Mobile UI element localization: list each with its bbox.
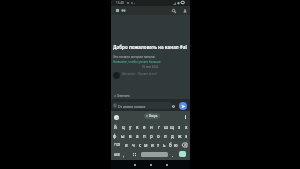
staticText: я <box>125 142 128 148</box>
staticText: ц <box>122 124 125 130</box>
staticText: т <box>157 142 160 148</box>
staticText: ч <box>132 142 135 148</box>
button[interactable]: Back <box>127 160 143 169</box>
staticText: ш <box>164 124 168 130</box>
staticText: и <box>151 142 154 148</box>
button[interactable]: Avatar <box>113 72 120 79</box>
button[interactable]: у <box>127 122 134 131</box>
staticText: й <box>114 124 117 130</box>
button[interactable]: Send <box>179 102 187 110</box>
button[interactable]: ф <box>111 131 119 140</box>
staticText: у <box>129 124 132 130</box>
button[interactable]: в <box>127 131 134 140</box>
button[interactable]: э <box>183 131 190 140</box>
button[interactable]: д <box>169 131 176 140</box>
staticText: ь <box>163 142 166 148</box>
button[interactable]: Ответить <box>114 94 130 98</box>
staticText: Это начало истории канала. <box>113 55 156 59</box>
button[interactable]: г <box>155 122 162 131</box>
staticText: 15:48 <box>116 1 124 5</box>
button[interactable]: м <box>143 140 149 149</box>
staticText: ы <box>121 133 125 139</box>
button[interactable]: More options <box>183 114 187 120</box>
staticText: б <box>169 142 172 148</box>
staticText: ю <box>174 142 178 148</box>
staticText: с <box>139 142 142 148</box>
staticText: к <box>136 124 139 130</box>
button[interactable]: Recents <box>159 160 175 169</box>
button[interactable]: х <box>183 122 190 131</box>
button[interactable]: Letters <box>112 149 121 160</box>
button[interactable]: р <box>148 131 155 140</box>
button[interactable]: ь <box>161 140 167 149</box>
button[interactable]: ц <box>119 122 127 131</box>
button[interactable]: Attach <box>170 103 176 109</box>
staticText: ж <box>178 133 182 139</box>
staticText: в <box>129 133 132 139</box>
button[interactable]: От имени канала <box>112 102 172 109</box>
button[interactable]: к <box>134 122 141 131</box>
button[interactable]: п <box>141 131 148 140</box>
staticText: Вчера <box>149 114 158 118</box>
button[interactable]: щ <box>169 122 176 131</box>
button[interactable]: б <box>167 140 173 149</box>
button[interactable]: о <box>155 131 162 140</box>
button[interactable]: я <box>123 140 130 149</box>
staticText: л <box>164 133 167 139</box>
staticText: о <box>157 133 160 139</box>
button[interactable]: Space <box>141 152 168 157</box>
staticText: ф <box>113 133 117 139</box>
button[interactable]: л <box>162 131 169 140</box>
staticText: 16 июл 2024 <box>142 65 159 69</box>
button[interactable]: й <box>111 122 119 131</box>
staticText: з <box>178 124 181 130</box>
button[interactable]: . <box>170 149 176 160</box>
staticText: АБВ <box>114 153 120 157</box>
staticText: е <box>143 124 146 130</box>
staticText: Добро пожаловать на канал #al <box>113 44 187 50</box>
button[interactable]: Вчера <box>144 113 160 119</box>
button[interactable]: Enter <box>179 151 186 157</box>
button[interactable]: ж <box>176 131 183 140</box>
staticText: Ответить <box>117 94 130 98</box>
button[interactable]: Emoji <box>131 149 138 160</box>
button[interactable]: и <box>149 140 155 149</box>
button[interactable]: Search <box>170 6 178 15</box>
staticText: а <box>136 133 139 139</box>
button[interactable]: ш <box>162 122 169 131</box>
staticText: От имени канала <box>118 104 146 108</box>
staticText: м <box>144 142 148 148</box>
button[interactable]: е <box>141 122 148 131</box>
button[interactable]: Нажмите, чтобы узнать больше <box>113 60 161 64</box>
button[interactable]: Backspace <box>179 140 189 149</box>
button[interactable]: ы <box>119 131 127 140</box>
button[interactable]: Symbols <box>112 140 123 149</box>
button[interactable]: ю <box>173 140 179 149</box>
button[interactable]: с <box>137 140 143 149</box>
staticText: г <box>158 124 160 130</box>
staticText: п <box>143 133 146 139</box>
staticText: Alexander <box>122 72 136 76</box>
button[interactable]: н <box>148 122 155 131</box>
staticText: . <box>172 152 174 158</box>
staticText: р <box>150 133 153 139</box>
staticText: ?123 <box>114 143 121 147</box>
staticText: щ <box>170 124 175 130</box>
button[interactable]: з <box>176 122 183 131</box>
staticText: э <box>185 133 188 139</box>
staticText: Привет всем! <box>138 72 157 76</box>
button[interactable]: а <box>134 131 141 140</box>
staticText: н <box>150 124 153 130</box>
button[interactable]: Menu <box>113 6 121 15</box>
button[interactable]: т <box>155 140 161 149</box>
button[interactable]: ч <box>130 140 137 149</box>
staticText: , <box>123 152 125 158</box>
staticText: д <box>171 133 174 139</box>
button[interactable]: Google <box>114 115 119 120</box>
button[interactable]: , <box>121 149 127 160</box>
button[interactable]: Home <box>143 160 159 169</box>
button[interactable]: Profile <box>181 6 189 15</box>
button[interactable]: Channels <box>120 6 128 15</box>
staticText: х <box>185 124 188 130</box>
